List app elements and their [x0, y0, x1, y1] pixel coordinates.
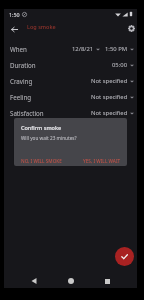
staticText: 1:50	[9, 11, 20, 18]
button[interactable]: Craving	[4, 73, 137, 89]
staticText: Will you wait 23 minutes?	[21, 135, 77, 141]
button[interactable]: Duration	[4, 57, 137, 73]
button[interactable]: NO, I WILL SMOKE	[18, 156, 65, 166]
staticText: When	[10, 45, 27, 53]
staticText: 1:50 PM	[105, 45, 128, 53]
staticText: Feeling	[10, 93, 32, 101]
staticText: Duration	[10, 61, 36, 69]
staticText: Log smoke	[27, 23, 56, 30]
button[interactable]: Home	[64, 274, 78, 288]
button[interactable]: Settings	[125, 22, 138, 35]
button[interactable]: Back	[27, 274, 41, 288]
button[interactable]: When	[4, 41, 137, 57]
staticText: YES, I WILL WAIT	[83, 158, 121, 164]
staticText: NO, I WILL SMOKE	[21, 158, 62, 164]
staticText: Not specified	[91, 93, 128, 101]
staticText: 05:00	[112, 61, 128, 69]
button[interactable]: Satisfaction	[4, 105, 137, 121]
staticText: 12/8/21	[72, 45, 94, 53]
staticText: Confirm smoke	[21, 124, 62, 131]
staticText: Not specified	[91, 109, 128, 117]
button[interactable]: Back	[8, 23, 21, 36]
staticText: Not specified	[91, 77, 128, 85]
button[interactable]: Save	[115, 247, 134, 266]
staticText: Craving	[10, 77, 33, 85]
button[interactable]: Recent apps	[100, 274, 114, 288]
button[interactable]: Feeling	[4, 89, 137, 105]
button[interactable]: YES, I WILL WAIT	[80, 156, 124, 166]
staticText: Satisfaction	[10, 109, 44, 117]
